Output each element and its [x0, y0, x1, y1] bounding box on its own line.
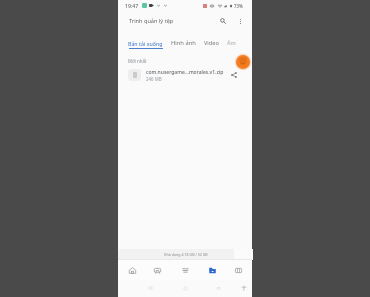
button[interactable]: Recents: [212, 282, 224, 294]
button[interactable]: Âm: [227, 37, 236, 49]
staticText: 246 MB: [146, 76, 162, 82]
button[interactable]: Files: [202, 260, 222, 280]
staticText: Hình ảnh: [171, 39, 196, 47]
button[interactable]: Screen recorder: [234, 53, 252, 71]
button[interactable]: Menu: [175, 260, 195, 280]
button[interactable]: More options: [234, 15, 246, 27]
button[interactable]: Messages: [147, 260, 167, 280]
staticText: Mới nhất: [128, 58, 147, 64]
button[interactable]: Share: [228, 69, 240, 81]
staticText: Video: [204, 39, 219, 47]
button[interactable]: Home: [122, 260, 142, 280]
button[interactable]: Video: [204, 37, 219, 49]
button[interactable]: com.nusergame...morales.v1.zip: [118, 64, 252, 85]
button[interactable]: Bản tải xuống: [128, 38, 163, 49]
button[interactable]: Search: [217, 15, 229, 27]
button[interactable]: Hình ảnh: [171, 37, 196, 49]
button[interactable]: Home: [179, 282, 191, 294]
staticText: 19:47: [125, 2, 139, 9]
staticText: Khả dụng 4.18 GB / 32 GB: [164, 252, 208, 257]
staticText: Âm: [227, 39, 236, 47]
button[interactable]: Back: [144, 282, 156, 294]
button[interactable]: Tools: [228, 260, 248, 280]
staticText: 73%: [234, 3, 243, 9]
staticText: Trình quản lý tệp: [129, 17, 174, 25]
staticText: com.nusergame...morales.v1.zip: [146, 69, 224, 76]
staticText: Bản tải xuống: [128, 40, 163, 47]
button[interactable]: Hide keyboard: [238, 282, 250, 294]
